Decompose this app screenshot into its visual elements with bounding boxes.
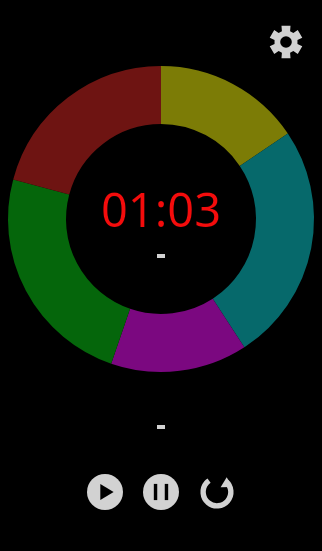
- button[interactable]: Settings: [266, 22, 306, 62]
- button[interactable]: Play: [87, 474, 123, 510]
- button[interactable]: Restart: [199, 474, 235, 510]
- staticText: 01:03: [0, 177, 322, 551]
- button[interactable]: Pause: [143, 474, 179, 510]
